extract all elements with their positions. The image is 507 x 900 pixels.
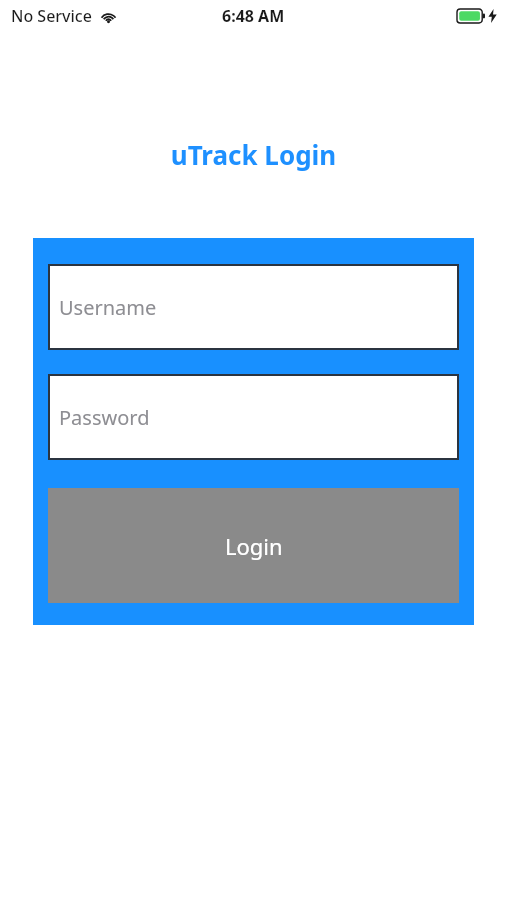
staticText: Password xyxy=(59,404,150,431)
staticText: 6:48 AM xyxy=(222,5,285,27)
staticText: Login xyxy=(225,531,283,561)
button[interactable]: Username xyxy=(48,264,459,350)
staticText: Username xyxy=(59,294,157,321)
staticText: No Service xyxy=(11,5,92,27)
button[interactable]: Password xyxy=(48,374,459,460)
button[interactable]: Login xyxy=(48,488,459,603)
staticText: uTrack Login xyxy=(0,137,507,172)
